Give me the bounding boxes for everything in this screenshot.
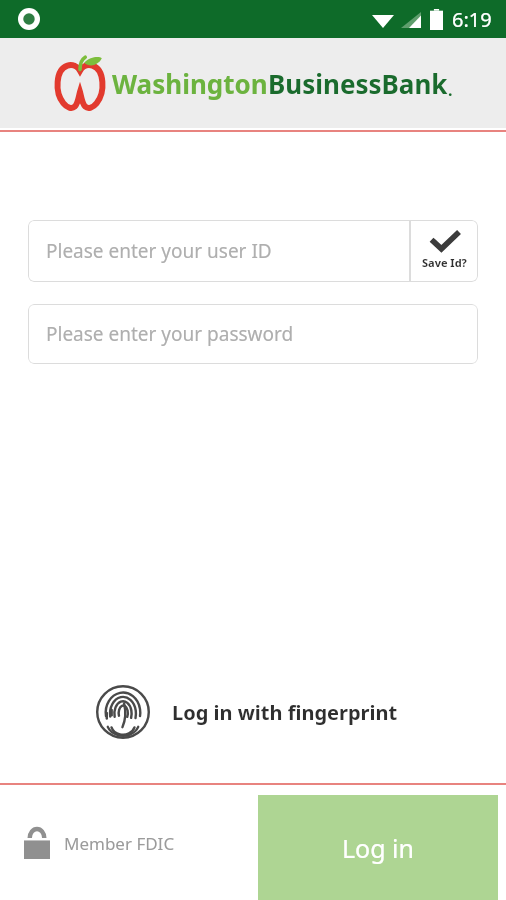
staticText: 6:19 <box>452 6 492 33</box>
button[interactable]: Please enter your user ID <box>28 220 410 282</box>
staticText: Washington <box>112 66 268 101</box>
staticText: Log in with fingerprint <box>172 699 398 726</box>
button[interactable]: Log in with fingerprint <box>0 669 506 755</box>
staticText: . <box>448 79 453 101</box>
button[interactable]: Save Id <box>410 220 478 282</box>
button[interactable]: Member FDIC <box>24 827 175 859</box>
staticText: Save Id? <box>422 255 467 270</box>
button[interactable]: Please enter your password <box>28 304 478 364</box>
staticText: Log in <box>342 831 415 865</box>
staticText: Member FDIC <box>64 832 175 855</box>
staticText: Please enter your user ID <box>46 238 272 264</box>
staticText: Please enter your password <box>46 321 294 347</box>
button[interactable]: Log in <box>258 795 498 900</box>
staticText: BusinessBank <box>268 66 448 101</box>
